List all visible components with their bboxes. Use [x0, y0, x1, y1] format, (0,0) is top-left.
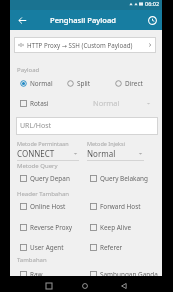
staticText: Sambungan Ganda	[100, 270, 158, 279]
staticText: Online Host	[30, 202, 66, 211]
staticText: User Agent	[30, 243, 64, 252]
staticText: Query Depan	[30, 174, 70, 183]
button[interactable]: Recents	[42, 280, 56, 292]
staticText: Normal	[93, 98, 120, 108]
button[interactable]: Rotasi	[20, 98, 70, 108]
staticText: Metode Permintaan	[17, 140, 69, 147]
staticText: Metode Injeksi	[87, 140, 126, 147]
button[interactable]: Query Belakang	[90, 173, 162, 183]
button[interactable]: Normal	[20, 78, 53, 88]
staticText: Metode Query	[17, 162, 58, 170]
staticText: CONNECT	[17, 148, 55, 159]
button[interactable]: Direct	[115, 78, 143, 88]
staticText: Reverse Proxy	[30, 223, 73, 232]
button[interactable]: Reverse Proxy	[20, 222, 88, 232]
staticText: Rotasi	[30, 99, 49, 108]
button[interactable]: Sambungan Ganda	[90, 269, 162, 279]
staticText: Referer	[100, 243, 123, 252]
button[interactable]: Metode Permintaan	[17, 140, 79, 161]
staticText: Header Tambahan	[17, 190, 69, 198]
staticText: URL/Host	[20, 121, 52, 131]
button[interactable]: Raw	[20, 269, 88, 279]
button[interactable]: Keep Alive	[90, 222, 162, 232]
staticText: 06:02	[145, 0, 160, 7]
staticText: HTTP Proxy → SSH (Custom Payload)	[27, 41, 133, 49]
button[interactable]: Referer	[90, 242, 162, 252]
staticText: Payload	[17, 66, 40, 74]
staticText: Direct	[125, 79, 143, 88]
staticText: Split	[77, 79, 91, 88]
button[interactable]: Split	[67, 78, 91, 88]
button[interactable]: HTTP Proxy → SSH (Custom Payload)	[14, 37, 156, 53]
staticText: Raw	[30, 270, 43, 279]
staticText: Query Belakang	[100, 174, 148, 183]
button[interactable]: URL/Host	[16, 117, 158, 135]
staticText: Penghasil Payload	[50, 15, 117, 25]
button[interactable]: Home	[78, 280, 92, 292]
staticText: Tambahan	[17, 256, 47, 264]
button[interactable]: Back	[14, 12, 30, 28]
staticText: Normal	[30, 79, 53, 88]
button[interactable]: History	[145, 13, 159, 27]
button[interactable]: Metode Injeksi	[87, 140, 144, 161]
staticText: Normal	[87, 148, 116, 159]
button[interactable]: Forward Host	[90, 201, 162, 211]
staticText: Keep Alive	[100, 223, 131, 232]
staticText: Forward Host	[100, 202, 141, 211]
button[interactable]: Online Host	[20, 201, 88, 211]
button[interactable]: Back	[117, 280, 131, 292]
button[interactable]: User Agent	[20, 242, 88, 252]
button[interactable]: Query Depan	[20, 173, 88, 183]
